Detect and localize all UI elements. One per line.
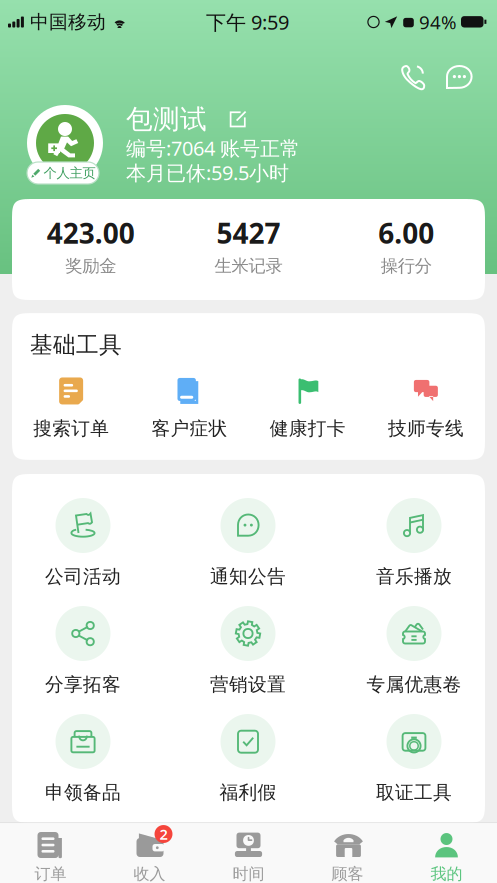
staticText: 生米记录 (214, 255, 282, 277)
button[interactable]: 营销设置 (207, 606, 289, 696)
staticText: 423.00 (47, 214, 135, 251)
staticText: 健康打卡 (270, 417, 346, 440)
button[interactable]: 公司活动 (42, 498, 124, 588)
staticText: 中国移动 (30, 10, 106, 33)
button[interactable]: 取证工具 (373, 714, 455, 804)
staticText: 收入 (133, 864, 165, 883)
button[interactable]: Messages (444, 64, 474, 92)
button[interactable]: 专属优惠卷 (373, 606, 455, 696)
button[interactable]: 2 (100, 831, 199, 883)
staticText: 福利假 (219, 781, 276, 804)
staticText: 我的 (430, 864, 462, 883)
button[interactable]: 订单 (1, 831, 100, 883)
button[interactable]: 我的 (397, 831, 496, 883)
staticText: 下午 9:59 (206, 9, 289, 35)
staticText: 奖励金 (65, 255, 116, 277)
button[interactable]: 分享拓客 (42, 606, 124, 696)
staticText: 公司活动 (45, 565, 121, 588)
staticText: 营销设置 (210, 673, 286, 696)
button[interactable]: 时间 (199, 831, 298, 883)
button[interactable]: Edit profile (229, 110, 247, 128)
staticText: 取证工具 (376, 781, 452, 804)
staticText: 操行分 (381, 255, 432, 277)
button[interactable]: 通知公告 (207, 498, 289, 588)
staticText: 编号:7064 账号正常 (126, 135, 300, 161)
button[interactable]: 搜索订单 (12, 377, 130, 440)
button[interactable]: Call (400, 64, 426, 92)
button[interactable]: 客户症状 (130, 377, 248, 440)
staticText: 音乐播放 (376, 565, 452, 588)
staticText: 包测试 (126, 103, 207, 136)
staticText: 订单 (34, 864, 66, 883)
button[interactable]: 顾客 (298, 831, 397, 883)
staticText: 5427 (216, 214, 280, 251)
staticText: 顾客 (331, 864, 363, 883)
button[interactable]: 6.00 (327, 214, 485, 277)
staticText: 基础工具 (30, 331, 122, 359)
staticText: 客户症状 (151, 417, 227, 440)
staticText: 技师专线 (388, 417, 464, 440)
button[interactable]: 5427 (170, 214, 327, 277)
staticText: 申领备品 (45, 781, 121, 804)
button[interactable]: 音乐播放 (373, 498, 455, 588)
staticText: 94% (419, 10, 457, 34)
staticText: 6.00 (378, 214, 434, 251)
button[interactable]: 技师专线 (367, 377, 485, 440)
staticText: 本月已休:59.5小时 (126, 159, 289, 186)
button[interactable]: 福利假 (207, 714, 289, 804)
staticText: 2 (159, 824, 167, 844)
button[interactable]: 申领备品 (42, 714, 124, 804)
staticText: 通知公告 (210, 565, 286, 588)
staticText: 专属优惠卷 (366, 673, 461, 696)
button[interactable]: 个人主页 (27, 162, 99, 184)
staticText: 分享拓客 (45, 673, 121, 696)
button[interactable]: 423.00 (12, 214, 170, 277)
staticText: 时间 (232, 864, 264, 883)
staticText: 个人主页 (43, 165, 95, 181)
button[interactable]: 健康打卡 (248, 377, 367, 440)
staticText: 搜索订单 (33, 417, 109, 440)
button[interactable]: Profile (25, 105, 105, 191)
